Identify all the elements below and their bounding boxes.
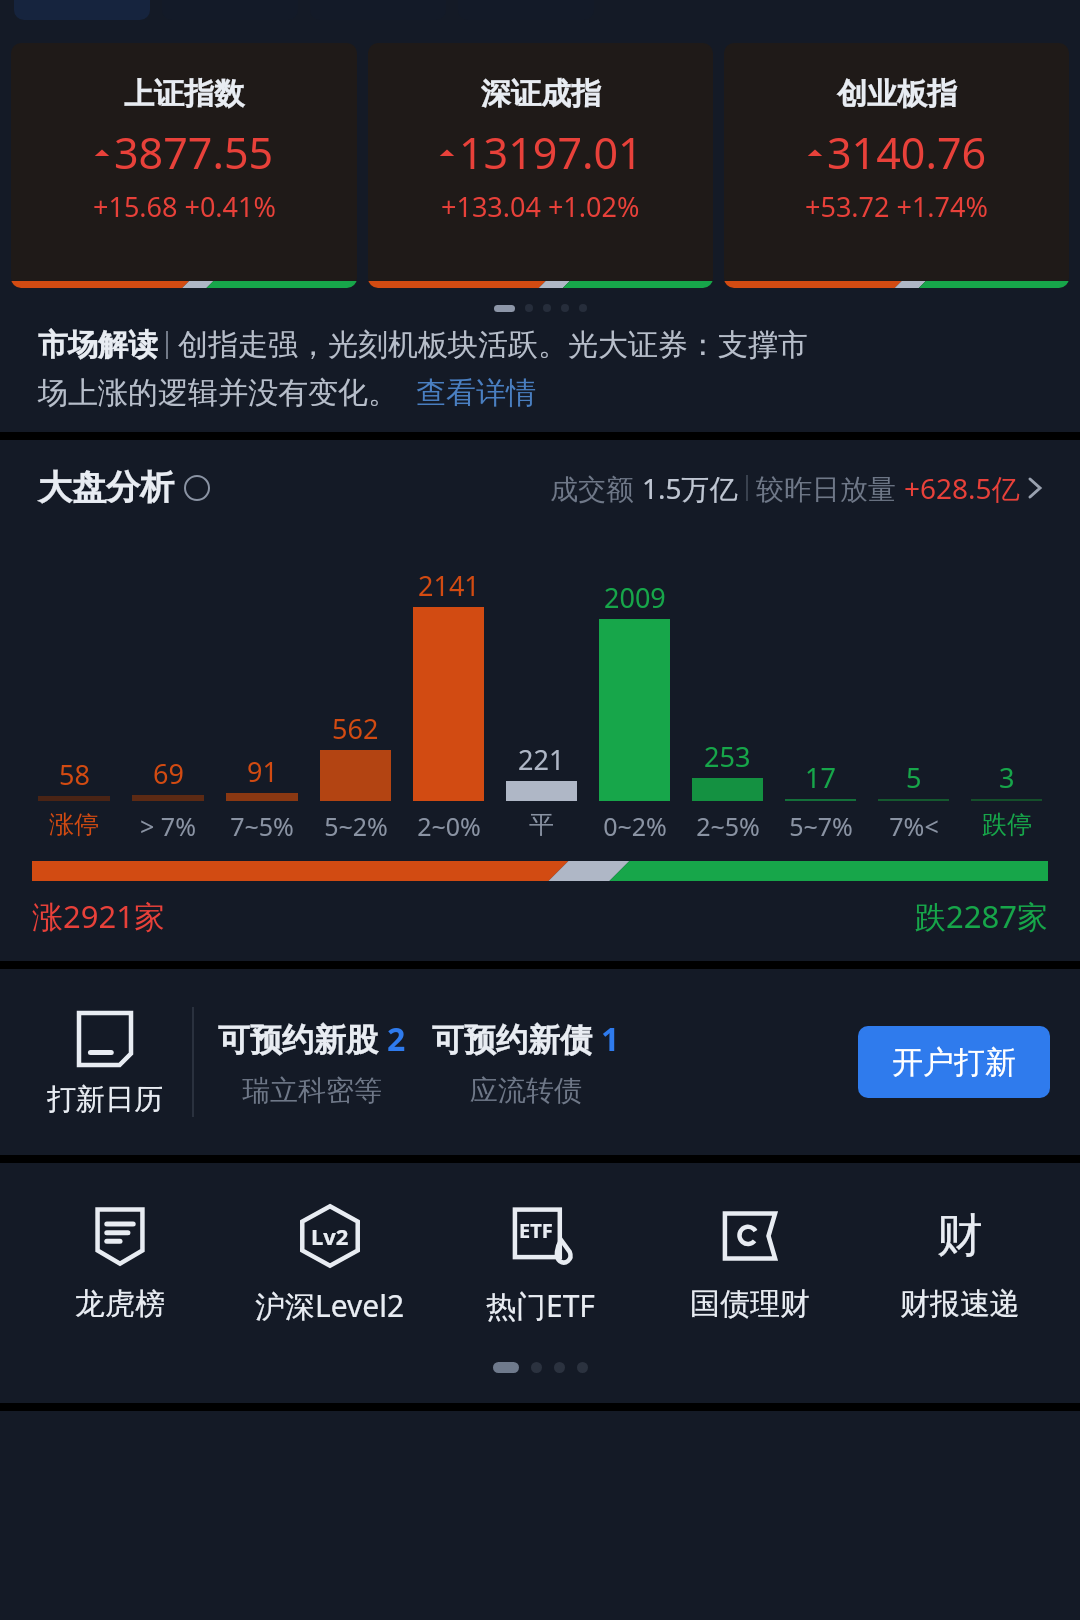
staticText: 2~5% [696,809,760,843]
staticText: 可预约新债 [432,1017,601,1061]
staticText: 较昨日放量 [756,469,904,507]
button[interactable]: 打新日历 [30,1007,180,1118]
staticText: Lv2 [311,1221,349,1251]
staticText: 市场解读 [38,326,158,364]
button[interactable]: 上证指数 [11,43,357,288]
staticText: 大盘分析 [38,466,174,509]
staticText: 562 [332,710,379,747]
staticText: 69 [153,755,184,792]
staticText: 5~2% [324,809,388,843]
staticText: 91 [247,753,278,790]
staticText: +133.04 +1.02% [441,188,640,225]
other: 财报速递 [927,1203,993,1269]
staticText: 可预约新股 [218,1017,387,1061]
staticText: 2009 [604,579,666,616]
staticText: 应流转债 [470,1073,582,1108]
staticText: 场上涨的逻辑并没有变化。 [38,374,398,412]
staticText: 打新日历 [47,1081,163,1118]
button[interactable]: 国债理财 [660,1203,840,1323]
staticText: +628.5亿 [904,469,1020,507]
staticText: 5 [906,759,922,796]
staticText: 0~2% [603,809,667,843]
staticText: 涨停 [49,809,99,840]
staticText: ETF [519,1217,553,1244]
other: 国债理财 [717,1203,783,1269]
staticText: > 7% [140,809,196,843]
staticText: 221 [518,741,565,778]
staticText: +15.68 +0.41% [93,188,276,225]
staticText: 瑞立科密等 [242,1073,382,1108]
button[interactable]: 开户打新 [858,1026,1050,1098]
staticText: 开户打新 [892,1043,1016,1082]
staticText: 龙虎榜 [75,1285,165,1323]
button[interactable]: 创业板指 [724,43,1069,288]
staticText: 热门ETF [486,1285,595,1326]
button[interactable]: 大盘分析 [38,466,1042,509]
staticText: 深证成指 [481,75,601,113]
staticText: 13197.01 [459,123,643,182]
staticText: 2~0% [417,809,481,843]
staticText: 2141 [418,567,480,604]
button[interactable]: 深证成指 [368,43,713,288]
staticText: 2 [387,1017,406,1061]
staticText: 跌2287家 [915,895,1048,937]
button[interactable]: 市场解读 [38,326,1042,412]
staticText: 3 [999,759,1015,796]
staticText: 253 [704,738,751,775]
staticText: 上证指数 [124,75,244,113]
staticText: 涨2921家 [32,895,165,937]
other: 热门ETF [507,1203,573,1269]
other: 沪深Level2 [297,1203,363,1269]
button[interactable]: 可预约新股 [218,1017,406,1108]
staticText: 7%< [889,809,939,843]
staticText: 1 [601,1017,620,1061]
staticText: 3877.55 [114,123,274,182]
other: 打新日历 [73,1007,137,1071]
staticText: 创指走强，光刻机板块活跃。光大证券：支撑市 [178,326,808,364]
staticText: 17 [805,759,836,796]
button[interactable]: 财报速递 [870,1203,1050,1323]
staticText: 58 [59,756,90,793]
staticText: 查看详情 [416,374,536,412]
staticText: 跌停 [982,809,1032,840]
staticText: 5~7% [789,809,853,843]
staticText: 1.5万亿 [642,469,738,507]
button[interactable]: 热门ETF [450,1203,630,1326]
staticText: 平 [529,809,554,840]
staticText: 创业板指 [837,75,957,113]
staticText: 7~5% [230,809,294,843]
staticText: +53.72 +1.74% [805,188,988,225]
other: 龙虎榜 [87,1203,153,1269]
button[interactable]: 龙虎榜 [30,1203,210,1323]
staticText: 成交额 [550,469,642,507]
staticText: 3140.76 [827,123,987,182]
staticText: 财 [937,1207,983,1265]
staticText: 财报速递 [900,1285,1020,1323]
staticText: 沪深Level2 [255,1285,405,1326]
button[interactable]: 沪深Level2 [240,1203,420,1326]
button[interactable]: 可预约新债 [432,1017,620,1108]
staticText: 国债理财 [690,1285,810,1323]
